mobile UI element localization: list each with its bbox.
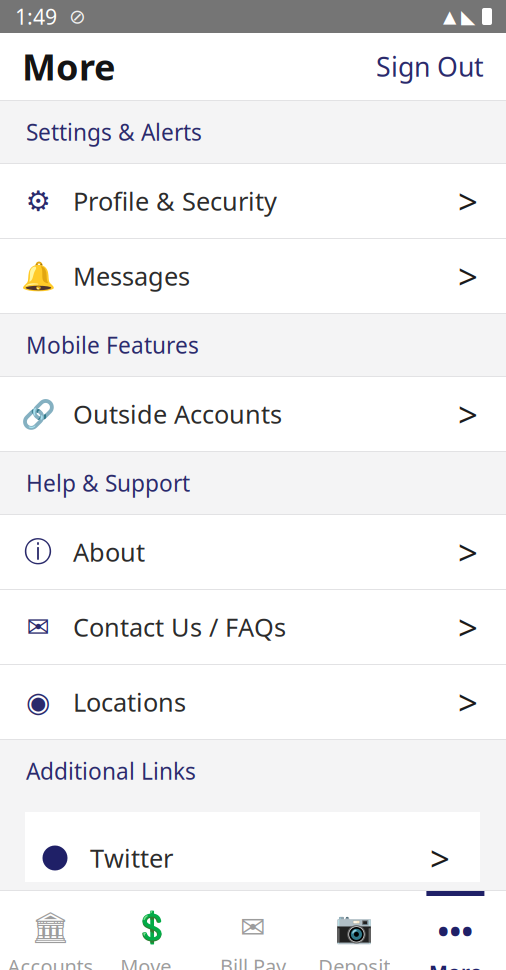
- staticText: ◉: [26, 686, 50, 718]
- button[interactable]: Sign Out: [376, 39, 506, 94]
- staticText: >: [458, 604, 478, 650]
- button[interactable]: 📷: [304, 891, 405, 970]
- button[interactable]: ◉: [0, 665, 506, 740]
- staticText: More: [429, 959, 482, 970]
- staticText: >: [458, 253, 478, 299]
- button[interactable]: ✉: [0, 590, 506, 665]
- staticText: ◣: [461, 6, 475, 27]
- staticText: Bill Pay: [220, 953, 286, 970]
- staticText: ⓘ: [24, 535, 52, 569]
- staticText: ⚙: [25, 185, 50, 217]
- button[interactable]: 🔗: [0, 377, 506, 452]
- staticText: >: [458, 391, 478, 437]
- staticText: Settings & Alerts: [26, 117, 202, 147]
- staticText: Move Money: [120, 953, 183, 970]
- staticText: ✉: [26, 611, 49, 643]
- staticText: Accounts: [8, 953, 94, 970]
- staticText: About: [73, 535, 145, 569]
- staticText: More: [22, 43, 115, 90]
- staticText: Contact Us / FAQs: [73, 610, 286, 644]
- button[interactable]: Twitter: [25, 812, 480, 882]
- staticText: ✉: [240, 910, 266, 945]
- staticText: Mobile Features: [26, 330, 199, 360]
- staticText: Profile & Security: [73, 184, 277, 218]
- staticText: 🔗: [20, 398, 55, 430]
- staticText: Additional Links: [26, 756, 196, 786]
- staticText: ▲: [443, 7, 456, 26]
- button[interactable]: 🔔: [0, 239, 506, 314]
- staticText: Locations: [73, 685, 186, 719]
- staticText: 📷: [335, 910, 373, 945]
- staticText: •••: [437, 910, 473, 951]
- button[interactable]: ✉: [202, 891, 304, 970]
- staticText: Outside Accounts: [73, 397, 282, 431]
- staticText: Sign Out: [376, 49, 484, 84]
- staticText: Deposit: [318, 953, 390, 970]
- button[interactable]: ⚙: [0, 164, 506, 239]
- staticText: 🔔: [20, 260, 55, 292]
- staticText: Twitter: [90, 841, 173, 875]
- staticText: Help & Support: [26, 468, 190, 498]
- staticText: ⊘: [69, 5, 86, 28]
- staticText: >: [458, 679, 478, 725]
- button[interactable]: 💲: [101, 891, 202, 970]
- staticText: >: [430, 835, 450, 881]
- staticText: >: [458, 529, 478, 575]
- staticText: Messages: [73, 259, 190, 293]
- staticText: >: [458, 178, 478, 224]
- button[interactable]: •••: [405, 891, 506, 970]
- staticText: 💲: [133, 910, 171, 945]
- button[interactable]: 🏛: [0, 891, 101, 970]
- button[interactable]: ⓘ: [0, 515, 506, 590]
- staticText: 1:49: [15, 2, 57, 31]
- staticText: 🏛: [31, 910, 70, 945]
